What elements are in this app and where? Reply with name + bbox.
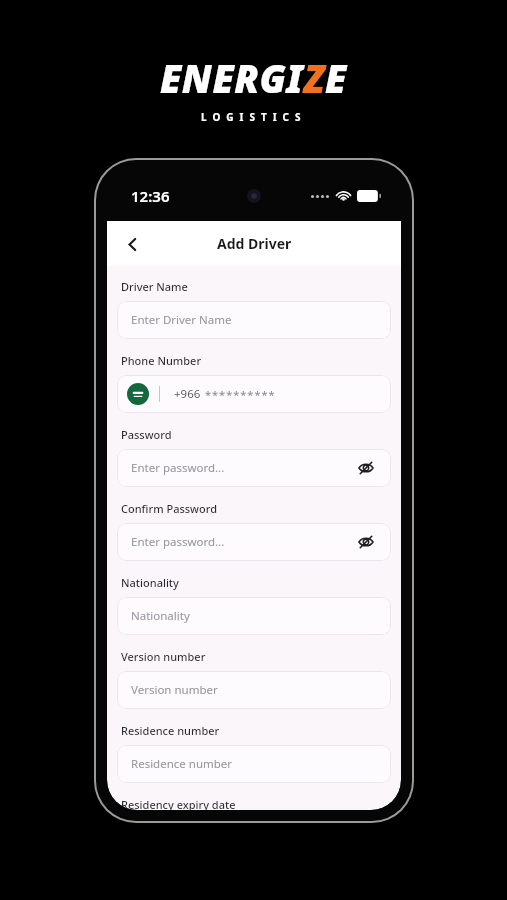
staticText: Phone Number (121, 353, 202, 368)
staticText: Nationality (131, 608, 377, 624)
button[interactable]: Residence number (117, 745, 391, 783)
staticText: 12:36 (131, 186, 170, 206)
staticText: Driver Name (121, 279, 188, 294)
staticText: Version number (121, 649, 206, 664)
staticText: Confirm Password (121, 501, 217, 516)
button[interactable]: Nationality (117, 597, 391, 635)
button[interactable]: Toggle password visibility (355, 531, 377, 553)
staticText: Residency expiry date (121, 797, 236, 810)
staticText: ENERGI (160, 52, 304, 104)
staticText: Enter password... (131, 460, 355, 476)
staticText: ********** (205, 387, 276, 402)
button[interactable]: +966 (117, 375, 391, 413)
button[interactable]: Enter Driver Name (117, 301, 391, 339)
button[interactable]: Enter password... (117, 449, 391, 487)
staticText: Enter password... (131, 534, 355, 550)
staticText: E (325, 52, 347, 104)
staticText: Nationality (121, 575, 179, 590)
staticText: Residence number (131, 756, 377, 772)
staticText: Z (304, 52, 325, 104)
button[interactable]: Back (115, 227, 149, 261)
staticText: LOGISTICS (201, 110, 307, 124)
staticText: Enter Driver Name (131, 312, 377, 328)
staticText: Version number (131, 682, 377, 698)
staticText: Password (121, 427, 172, 442)
button[interactable]: Toggle password visibility (355, 457, 377, 479)
button[interactable]: Enter password... (117, 523, 391, 561)
staticText: +966 (174, 386, 201, 402)
staticText: Add Driver (217, 234, 292, 253)
staticText: Residence number (121, 723, 220, 738)
button[interactable]: Version number (117, 671, 391, 709)
